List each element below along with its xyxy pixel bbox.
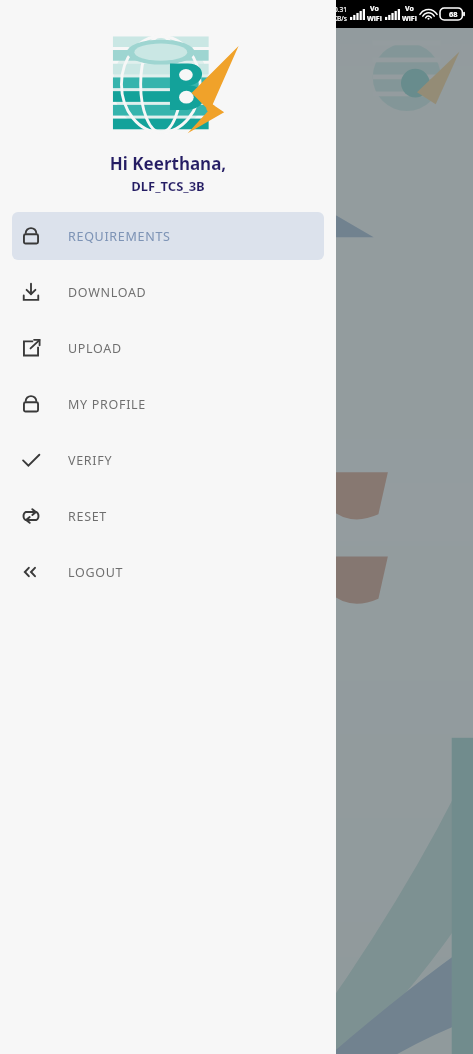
other: Signal strength: [385, 9, 400, 20]
staticText: Vo: [405, 4, 414, 14]
staticText: MY PROFILE: [68, 396, 146, 413]
other: Wi-Fi: [421, 8, 436, 20]
staticText: Hi Keerthana,: [0, 152, 336, 175]
staticText: VERIFY: [68, 452, 113, 469]
staticText: UPLOAD: [68, 340, 122, 357]
staticText: RESET: [68, 508, 107, 525]
staticText: DLF_TCS_3B: [0, 177, 336, 195]
staticText: 0.31: [334, 5, 347, 14]
staticText: REQUIREMENTS: [68, 228, 171, 245]
staticText: 68: [449, 9, 458, 19]
button[interactable]: DOWNLOAD: [12, 268, 324, 316]
button[interactable]: RESET: [12, 492, 324, 540]
other: Battery 68 percent: [440, 8, 466, 20]
button[interactable]: LOGOUT: [12, 548, 324, 596]
button[interactable]: UPLOAD: [12, 324, 324, 372]
staticText: WiFi: [402, 14, 417, 24]
staticText: WiFi: [367, 14, 382, 24]
button[interactable]: MY PROFILE: [12, 380, 324, 428]
button[interactable]: VERIFY: [12, 436, 324, 484]
staticText: Vo: [370, 4, 379, 14]
other: Signal strength: [350, 9, 365, 20]
staticText: DOWNLOAD: [68, 284, 147, 301]
staticText: KB/s: [333, 14, 347, 23]
button[interactable]: REQUIREMENTS: [12, 212, 324, 260]
staticText: LOGOUT: [68, 564, 124, 581]
